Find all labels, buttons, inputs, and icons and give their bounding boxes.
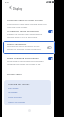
staticText: Increase the touch sensitivity of the sc…	[7, 45, 44, 51]
button[interactable]: Show charging information	[48, 57, 53, 60]
staticText: Looking for more?	[8, 82, 30, 85]
button[interactable]: Accidental touch protection	[48, 30, 53, 33]
staticText: Language	[8, 91, 18, 94]
button[interactable]	[2, 29, 54, 40]
staticText: Show battery percentage and estimated ch…	[7, 60, 45, 66]
staticText: Always On Display	[8, 101, 26, 104]
staticText: Choose which apps keep running when you …	[7, 23, 50, 29]
button[interactable]	[2, 56, 54, 68]
button[interactable]	[2, 18, 54, 29]
staticText: Dark mode	[8, 87, 19, 90]
staticText: Continue apps on cover screen	[7, 18, 43, 21]
button[interactable]: Touch sensitivity	[47, 46, 52, 49]
button[interactable]	[3, 41, 55, 54]
staticText: Accidental touch protection	[7, 29, 40, 32]
staticText: Show charging information	[7, 56, 39, 59]
button[interactable]	[2, 71, 54, 78]
staticText: Display	[13, 7, 23, 11]
button[interactable]	[7, 86, 29, 90]
button[interactable]: Back	[7, 5, 13, 10]
staticText: 9:41	[5, 1, 10, 4]
button[interactable]	[7, 91, 29, 95]
button[interactable]	[7, 100, 29, 104]
staticText: Screen saver	[7, 72, 22, 75]
staticText: Touch sensitivity	[7, 42, 27, 45]
staticText: Voice assistant	[8, 96, 22, 99]
button[interactable]	[7, 95, 29, 99]
button[interactable]: Home	[28, 109, 31, 112]
staticText: Prevent the screen from responding to to…	[7, 33, 45, 39]
